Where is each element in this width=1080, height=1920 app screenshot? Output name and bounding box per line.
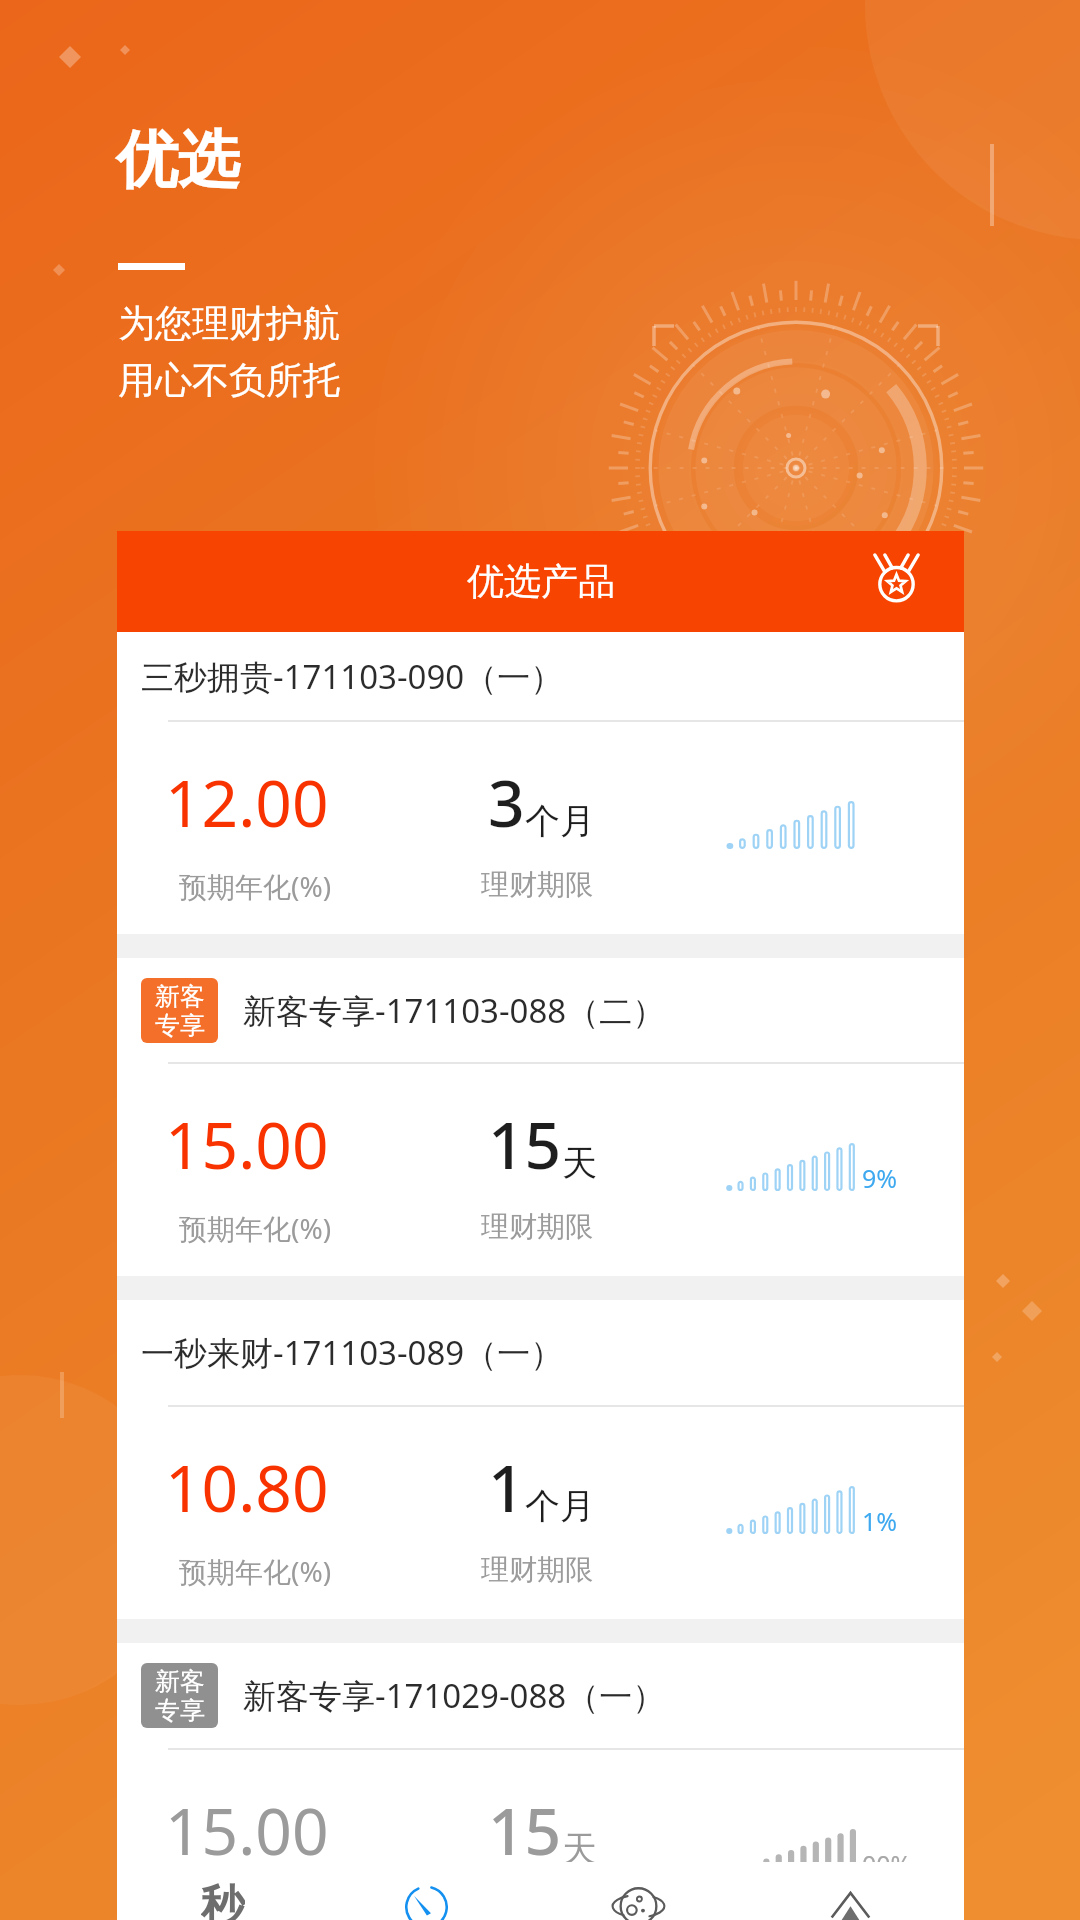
staticText: 12.00 [165, 759, 329, 846]
staticText: 新客 专享 [155, 1666, 205, 1726]
button[interactable]: Seconds [117, 1873, 328, 1920]
staticText: 三秒拥贵-171103-090（一） [141, 654, 564, 699]
staticText: 优选产品 [467, 558, 615, 605]
button[interactable]: Timer [328, 1873, 540, 1920]
staticText: 9% [862, 1161, 898, 1195]
staticText: 10.80 [165, 1444, 329, 1531]
staticText: 优选 [116, 121, 240, 199]
staticText: 新客 专享 [155, 981, 205, 1041]
staticText: 预期年化(%) [179, 1209, 332, 1247]
staticText: 个月 [525, 1484, 595, 1528]
staticText: 15 [488, 1787, 562, 1874]
button[interactable]: 三秒拥贵-171103-090（一） [117, 632, 964, 934]
staticText: 天 [562, 1141, 597, 1185]
staticText: 预期年化(%) [179, 867, 332, 905]
button[interactable]: 优选产品 [117, 531, 964, 632]
button[interactable]: Home [752, 1873, 964, 1920]
button[interactable]: Award [866, 552, 926, 612]
staticText: 理财期限 [481, 1552, 593, 1587]
staticText: 3 [488, 759, 525, 846]
staticText: 为您理财护航 [118, 300, 340, 347]
button[interactable]: 新客 专享 [117, 958, 964, 1276]
staticText: 新客专享-171103-088（二） [243, 988, 666, 1033]
staticText: 15.00 [165, 1787, 329, 1874]
staticText: 理财期限 [481, 867, 593, 902]
staticText: 理财期限 [481, 1209, 593, 1244]
button[interactable]: 一秒来财-171103-089（一） [117, 1300, 964, 1619]
staticText: 1 [488, 1444, 525, 1531]
staticText: 预期年化(%) [179, 1895, 332, 1920]
button[interactable]: 新客 专享 [117, 1643, 964, 1920]
staticText: 天 [562, 1827, 597, 1871]
staticText: 秒 [201, 1879, 245, 1920]
staticText: 15 [488, 1101, 562, 1188]
staticText: 00% [862, 1847, 912, 1881]
staticText: 用心不负所托 [118, 357, 340, 404]
staticText: 预期年化(%) [179, 1552, 332, 1590]
button[interactable]: Discover [540, 1873, 752, 1920]
staticText: 新客专享-171029-088（一） [243, 1673, 666, 1718]
staticText: 一秒来财-171103-089（一） [141, 1330, 564, 1375]
staticText: 个月 [525, 799, 595, 843]
staticText: 1% [862, 1504, 898, 1538]
staticText: 15.00 [165, 1101, 329, 1188]
